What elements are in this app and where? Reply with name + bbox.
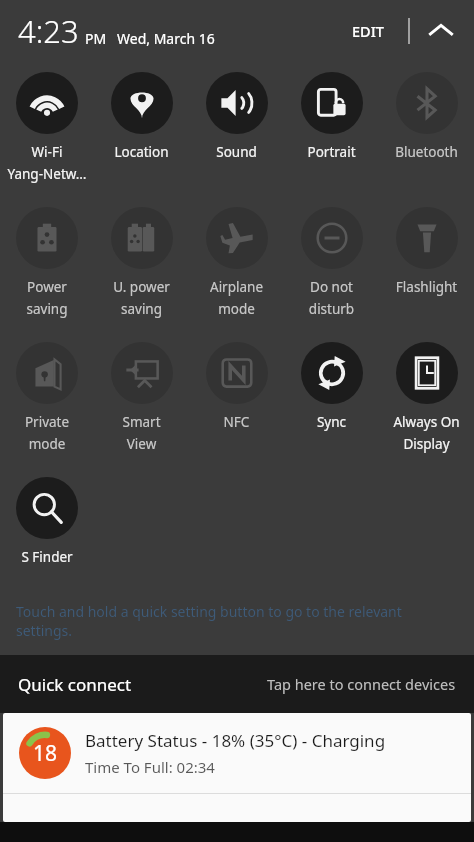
staticText: Quick connect — [18, 673, 132, 696]
staticText: 18 — [33, 739, 58, 768]
button[interactable]: Quick connect — [0, 655, 474, 713]
staticText: Power — [0, 278, 94, 296]
button[interactable]: NFC — [189, 332, 284, 467]
staticText: Tap here to connect devices — [267, 674, 456, 694]
staticText: disturb — [284, 300, 379, 318]
staticText: NFC — [189, 413, 284, 431]
staticText: Wi-Fi — [0, 143, 94, 161]
staticText: mode — [189, 300, 284, 318]
button[interactable]: Always On — [379, 332, 474, 467]
staticText: 4:23 — [18, 10, 79, 52]
staticText: Private — [0, 413, 94, 431]
button[interactable]: Sound — [189, 62, 284, 197]
button[interactable]: Location — [94, 62, 189, 197]
button[interactable]: Smart — [94, 332, 189, 467]
staticText: mode — [0, 435, 94, 453]
button[interactable]: Wi-Fi — [0, 62, 94, 197]
staticText: Battery Status - 18% (35°C) - Charging — [85, 729, 386, 752]
staticText: U. power — [94, 278, 189, 296]
button[interactable]: Power — [0, 197, 94, 332]
staticText: Always On — [379, 413, 474, 431]
button[interactable]: Collapse quick settings — [418, 8, 464, 54]
staticText: Wed, March 16 — [117, 29, 215, 48]
button[interactable]: Do not — [284, 197, 379, 332]
button[interactable]: 18 — [3, 713, 471, 822]
button[interactable]: Flashlight — [379, 197, 474, 332]
staticText: Portrait — [284, 143, 379, 161]
button[interactable]: Sync — [284, 332, 379, 467]
staticText: S Finder — [0, 548, 94, 566]
staticText: Do not — [284, 278, 379, 296]
button[interactable]: EDIT — [344, 13, 392, 49]
staticText: Touch and hold a quick setting button to… — [16, 602, 444, 640]
staticText: Sound — [189, 143, 284, 161]
button[interactable]: Private — [0, 332, 94, 467]
staticText: Yang-Netw… — [0, 165, 94, 183]
staticText: Bluetooth — [379, 143, 474, 161]
staticText: Airplane — [189, 278, 284, 296]
staticText: Time To Full: 02:34 — [85, 757, 215, 777]
staticText: Display — [379, 435, 474, 453]
staticText: View — [94, 435, 189, 453]
button[interactable]: Airplane — [189, 197, 284, 332]
button[interactable]: U. power — [94, 197, 189, 332]
staticText: PM — [85, 29, 107, 48]
staticText: Location — [94, 143, 189, 161]
staticText: saving — [94, 300, 189, 318]
staticText: saving — [0, 300, 94, 318]
staticText: Sync — [284, 413, 379, 431]
staticText: EDIT — [352, 21, 384, 41]
button[interactable]: Bluetooth — [379, 62, 474, 197]
staticText: Smart — [94, 413, 189, 431]
button[interactable]: S Finder — [0, 467, 94, 602]
button[interactable]: Portrait — [284, 62, 379, 197]
staticText: Flashlight — [379, 278, 474, 296]
